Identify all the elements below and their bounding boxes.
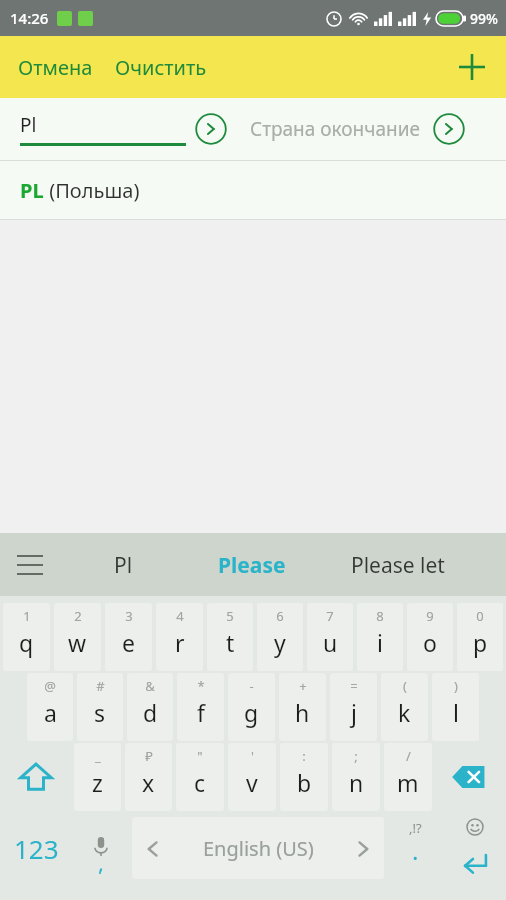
staticText: ; — [354, 747, 358, 765]
button[interactable]: ' — [228, 743, 276, 811]
staticText: h — [295, 697, 310, 728]
staticText: , — [98, 847, 104, 877]
staticText: Очистить — [115, 54, 207, 81]
button[interactable]: ; — [332, 743, 380, 811]
staticText: (Польша) — [44, 177, 140, 204]
staticText: 8 — [376, 607, 384, 625]
button[interactable]: " — [176, 743, 224, 811]
staticText: ' — [251, 747, 254, 765]
staticText: a — [44, 697, 57, 728]
staticText: 7 — [326, 607, 334, 625]
staticText: e — [122, 627, 135, 658]
staticText: r — [175, 627, 185, 658]
staticText: f — [197, 697, 205, 728]
staticText: PL — [20, 177, 44, 204]
staticText: t — [226, 627, 235, 658]
button[interactable]: 6 — [257, 603, 303, 671]
staticText: x — [142, 767, 155, 798]
staticText: g — [244, 697, 259, 728]
button[interactable]: 8 — [357, 603, 403, 671]
staticText: b — [297, 767, 312, 798]
button[interactable]: 2 — [54, 603, 101, 671]
button[interactable]: _ — [74, 743, 121, 811]
button[interactable]: 3 — [105, 603, 152, 671]
staticText: Please — [218, 551, 286, 580]
staticText: Pl — [20, 112, 37, 138]
button[interactable]: Очистить — [111, 44, 211, 91]
staticText: Страна окончание — [250, 116, 420, 142]
button[interactable]: Search by code — [194, 112, 228, 146]
staticText: 6 — [276, 607, 284, 625]
staticText: 0 — [476, 607, 484, 625]
button[interactable]: 123 — [0, 813, 72, 883]
staticText: 14:26 — [10, 8, 49, 28]
staticText: / — [406, 747, 411, 765]
staticText: # — [96, 677, 105, 695]
staticText: m — [397, 767, 419, 798]
button[interactable]: 5 — [207, 603, 253, 671]
staticText: 4 — [176, 607, 184, 625]
staticText: ( — [403, 677, 407, 695]
button[interactable]: 9 — [407, 603, 453, 671]
staticText: ₽ — [145, 747, 153, 765]
staticText: * — [197, 677, 205, 695]
button[interactable]: / — [384, 743, 432, 811]
button[interactable]: ₽ — [125, 743, 172, 811]
button[interactable]: Add — [450, 45, 494, 89]
staticText: 5 — [226, 607, 234, 625]
button[interactable]: ( — [381, 673, 428, 741]
button[interactable]: Enter — [444, 813, 506, 883]
staticText: w — [68, 627, 87, 658]
staticText: Pl — [114, 551, 133, 580]
staticText: y — [274, 627, 286, 658]
button[interactable]: # — [77, 673, 123, 741]
button[interactable]: @ — [27, 673, 73, 741]
staticText: i — [377, 627, 383, 658]
staticText: q — [19, 627, 34, 658]
button[interactable]: English (US) — [132, 817, 384, 879]
button[interactable]: = — [330, 673, 377, 741]
staticText: - — [249, 677, 254, 695]
button[interactable]: & — [127, 673, 173, 741]
staticText: o — [423, 627, 437, 658]
button[interactable]: PL — [0, 161, 506, 219]
staticText: 99% — [470, 9, 498, 28]
button[interactable]: Shift — [0, 743, 72, 811]
staticText: English (US) — [203, 835, 314, 862]
button[interactable]: - — [228, 673, 275, 741]
staticText: k — [398, 697, 411, 728]
staticText: s — [94, 697, 106, 728]
staticText: 123 — [14, 831, 59, 866]
staticText: 2 — [74, 607, 82, 625]
staticText: j — [351, 697, 357, 728]
button[interactable]: * — [177, 673, 224, 741]
staticText: 3 — [125, 607, 133, 625]
button[interactable]: + — [279, 673, 326, 741]
button[interactable]: 0 — [457, 603, 503, 671]
staticText: p — [473, 627, 488, 658]
button[interactable]: Please let — [318, 536, 478, 594]
staticText: u — [323, 627, 338, 658]
button[interactable]: Backspace — [434, 743, 506, 811]
button[interactable]: 1 — [3, 603, 50, 671]
staticText: + — [299, 677, 307, 695]
button[interactable]: Please — [190, 536, 314, 594]
button[interactable]: ) — [432, 673, 479, 741]
staticText: z — [92, 767, 103, 798]
button[interactable]: Voice input and comma — [72, 813, 130, 883]
button[interactable]: Pl — [78, 536, 168, 594]
staticText: l — [453, 697, 459, 728]
button[interactable]: Menu — [6, 541, 54, 589]
staticText: : — [302, 747, 306, 765]
staticText: = — [350, 677, 358, 695]
staticText: 9 — [426, 607, 434, 625]
button[interactable]: Punctuation — [386, 813, 444, 883]
staticText: Please let — [351, 551, 445, 580]
button[interactable]: 4 — [156, 603, 203, 671]
button[interactable]: 7 — [307, 603, 353, 671]
button[interactable]: Search by country — [432, 112, 466, 146]
staticText: v — [246, 767, 258, 798]
button[interactable]: Отмена — [0, 44, 111, 91]
staticText: @ — [44, 677, 56, 695]
button[interactable]: : — [280, 743, 328, 811]
